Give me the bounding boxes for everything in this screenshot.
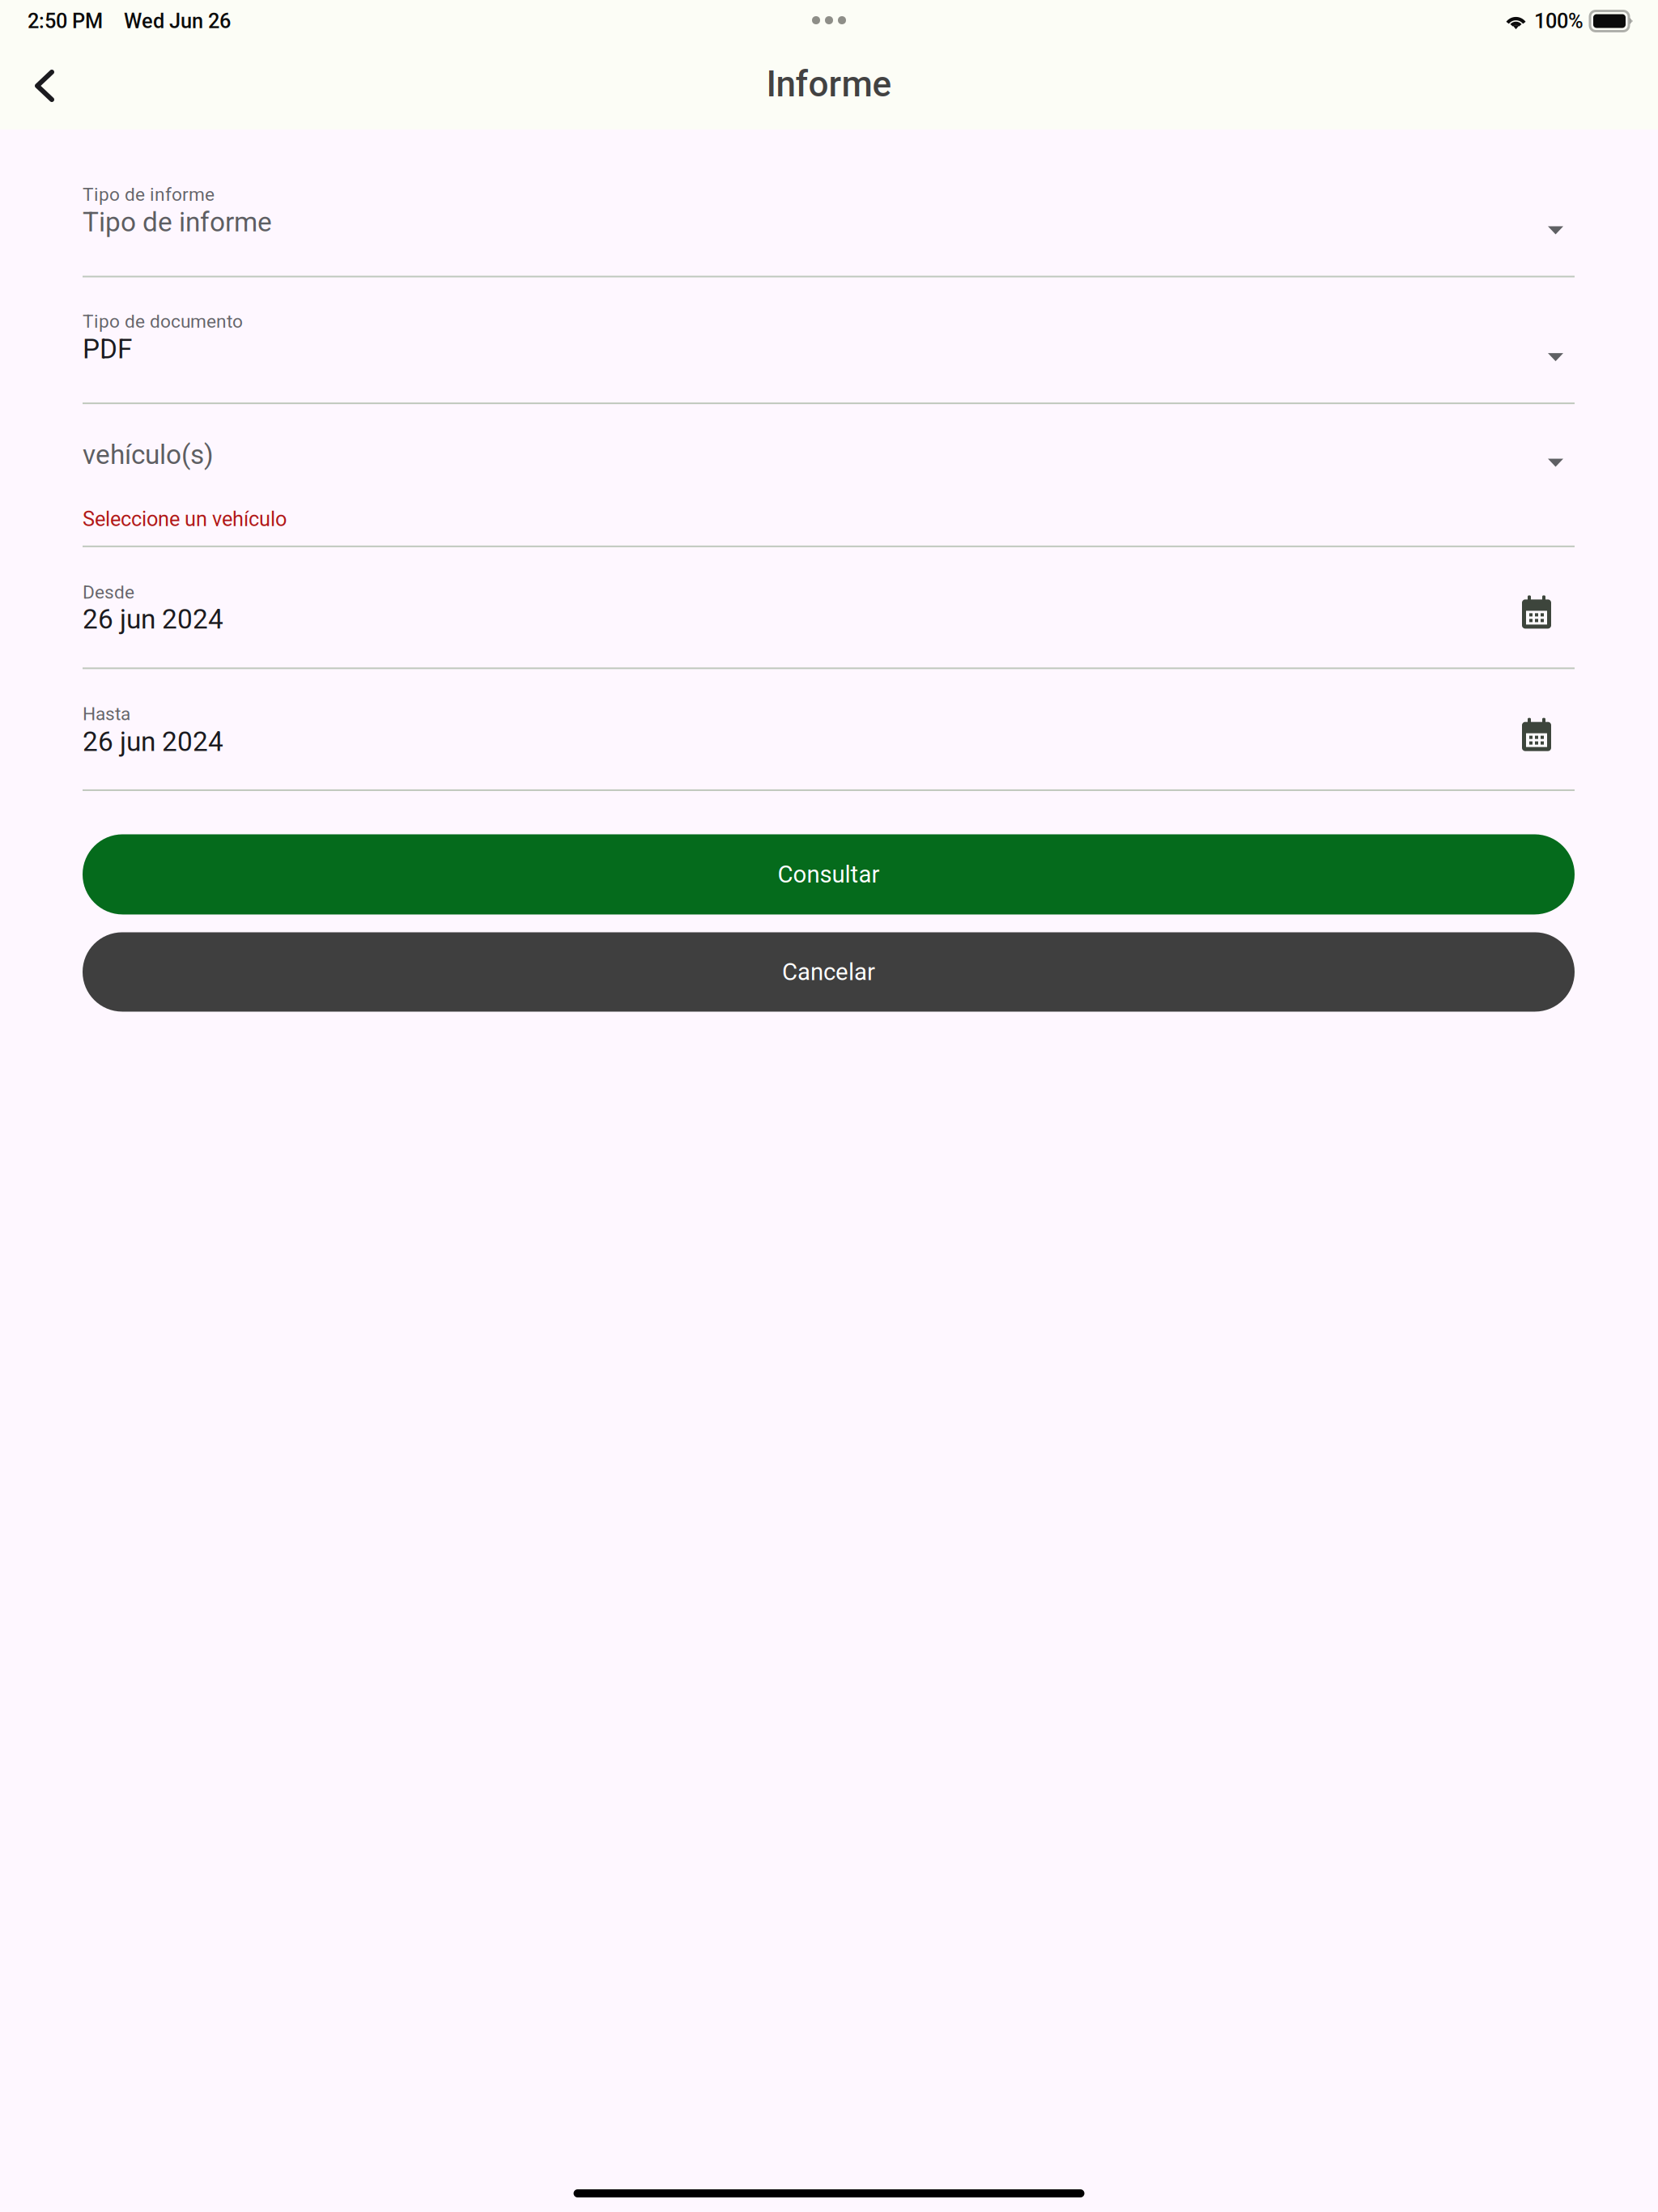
staticText: Desde xyxy=(83,582,134,603)
button[interactable]: vehículo(s) xyxy=(83,439,1575,470)
staticText: Tipo de informe xyxy=(83,184,215,205)
staticText: PDF xyxy=(83,333,132,365)
staticText: 26 jun 2024 xyxy=(83,603,223,635)
staticText: vehículo(s) xyxy=(83,439,214,470)
staticText: 2:50 PM xyxy=(28,9,103,33)
staticText: Consultar xyxy=(778,861,880,888)
button[interactable]: Back xyxy=(0,49,74,123)
staticText: 100% xyxy=(1534,9,1584,33)
staticText: Hasta xyxy=(83,703,130,725)
staticText: Tipo de documento xyxy=(83,311,243,332)
button[interactable]: Tipo de documento xyxy=(83,311,1575,365)
staticText: Wed Jun 26 xyxy=(124,9,231,33)
staticText: Informe xyxy=(766,63,892,105)
staticText: 26 jun 2024 xyxy=(83,726,223,758)
button[interactable]: Desde xyxy=(83,582,1575,635)
button[interactable]: Tipo de informe xyxy=(83,184,1575,238)
staticText: Seleccione un vehículo xyxy=(83,507,287,531)
button[interactable]: Cancelar xyxy=(83,932,1575,1012)
staticText: Tipo de informe xyxy=(83,206,272,238)
staticText: Cancelar xyxy=(782,958,875,986)
button[interactable]: Consultar xyxy=(83,834,1575,914)
button[interactable]: Hasta xyxy=(83,703,1575,758)
